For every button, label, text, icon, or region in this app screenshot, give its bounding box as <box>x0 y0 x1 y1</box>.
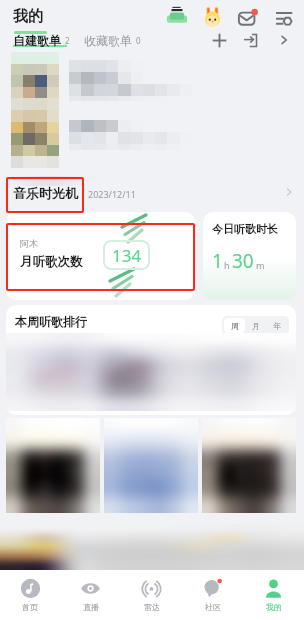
staticText: 自建歌单 <box>13 33 61 48</box>
staticText: 年 <box>273 321 281 331</box>
button[interactable]: Import playlist <box>243 33 258 48</box>
staticText: 我的 <box>13 7 43 26</box>
staticText: 2 <box>65 35 70 46</box>
staticText: 本周听歌排行 <box>15 314 87 329</box>
staticText: 首页 <box>22 602 38 612</box>
button[interactable]: 我的 <box>243 570 304 620</box>
button[interactable]: 收藏歌单 <box>84 33 141 48</box>
staticText: 社区 <box>205 602 221 612</box>
button[interactable]: 雷达 <box>121 570 182 620</box>
button[interactable]: 年 <box>266 318 287 333</box>
staticText: 收藏歌单 <box>84 33 132 48</box>
staticText: 周 <box>231 321 239 331</box>
button[interactable]: 自建歌单 <box>13 33 70 48</box>
staticText: 今日听歌时长 <box>212 222 278 236</box>
staticText: 音乐时光机 <box>13 185 78 201</box>
staticText: 月 <box>252 321 260 331</box>
staticText: h <box>224 259 230 271</box>
button[interactable]: 音乐时光机 <box>0 180 304 212</box>
button[interactable]: 月 <box>245 318 266 333</box>
button[interactable]: 今日听歌时长 <box>203 212 296 300</box>
button[interactable]: More <box>277 33 291 47</box>
button[interactable]: 阿木 <box>6 212 195 300</box>
button[interactable]: 直播 <box>60 570 121 620</box>
button[interactable] <box>202 418 296 513</box>
staticText: 0 <box>136 35 141 46</box>
button[interactable]: Profile avatar <box>202 6 223 27</box>
button[interactable]: Create playlist <box>211 32 228 49</box>
staticText: 30 <box>232 248 254 274</box>
button[interactable]: 社区 <box>182 570 243 620</box>
button[interactable]: Real Zone <box>165 3 189 27</box>
button[interactable]: Settings <box>275 9 293 27</box>
staticText: 1 <box>212 248 223 274</box>
staticText: 雷达 <box>144 602 160 612</box>
button[interactable]: 周 <box>224 318 245 333</box>
button[interactable] <box>104 418 198 513</box>
button[interactable] <box>6 418 100 513</box>
staticText: 月听歌次数 <box>20 254 83 270</box>
staticText: 直播 <box>83 602 99 612</box>
staticText: m <box>256 259 265 271</box>
staticText: 134 <box>112 244 142 267</box>
button[interactable]: 首页 <box>0 570 60 620</box>
staticText: 阿木 <box>20 238 38 249</box>
staticText: 我的 <box>266 602 282 612</box>
button[interactable]: Messages <box>237 8 258 29</box>
staticText: 2023/12/11 <box>88 188 136 200</box>
